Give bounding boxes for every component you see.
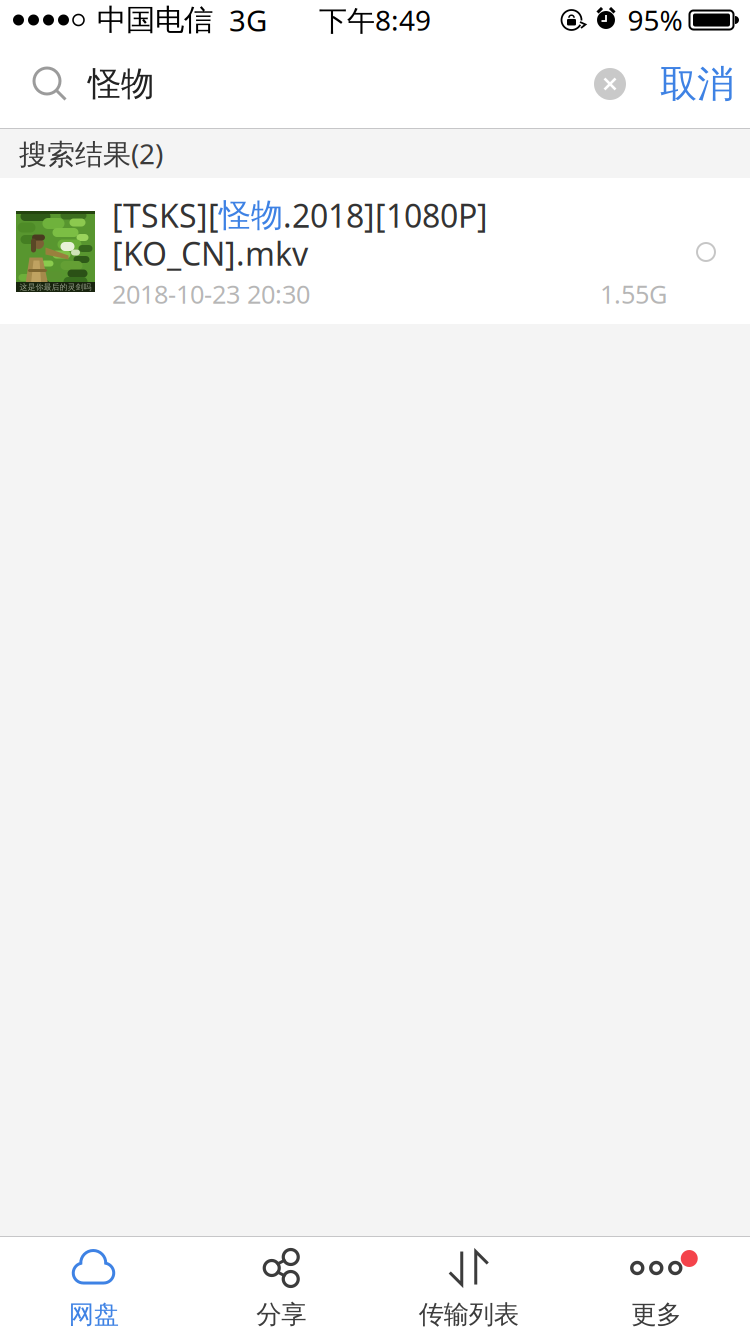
button[interactable]: 网盘 bbox=[0, 1236, 187, 1334]
button[interactable]: 这是你最后的灵剑吗 bbox=[0, 178, 750, 324]
staticText: .2018][1080P] bbox=[283, 194, 488, 236]
button[interactable]: 取消 bbox=[626, 45, 734, 123]
staticText: 2018-10-23 20:30 bbox=[112, 277, 310, 311]
staticText: 下午8:49 bbox=[319, 1, 431, 39]
staticText: 搜索结果(2) bbox=[19, 135, 163, 172]
staticText: 网盘 bbox=[69, 1299, 119, 1330]
staticText: 分享 bbox=[256, 1299, 306, 1330]
staticText: 3G bbox=[229, 0, 267, 39]
staticText: 1.55G bbox=[600, 277, 667, 311]
staticText: 更多 bbox=[631, 1299, 681, 1330]
staticText: [TSKS][ bbox=[112, 194, 219, 236]
button[interactable]: 更多 bbox=[562, 1236, 750, 1334]
staticText: 取消 bbox=[660, 61, 734, 107]
button[interactable]: 清除 bbox=[594, 48, 626, 120]
staticText: 这是你最后的灵剑吗 bbox=[19, 282, 91, 292]
staticText: 95% bbox=[627, 1, 682, 39]
staticText: 怪物 bbox=[88, 63, 154, 104]
staticText: 怪物 bbox=[219, 196, 283, 235]
staticText: 传输列表 bbox=[419, 1299, 519, 1330]
button[interactable]: 分享 bbox=[187, 1236, 375, 1334]
staticText: [KO_CN].mkv bbox=[112, 232, 308, 274]
staticText: 中国电信 bbox=[97, 2, 213, 38]
button[interactable]: 传输列表 bbox=[375, 1236, 562, 1334]
